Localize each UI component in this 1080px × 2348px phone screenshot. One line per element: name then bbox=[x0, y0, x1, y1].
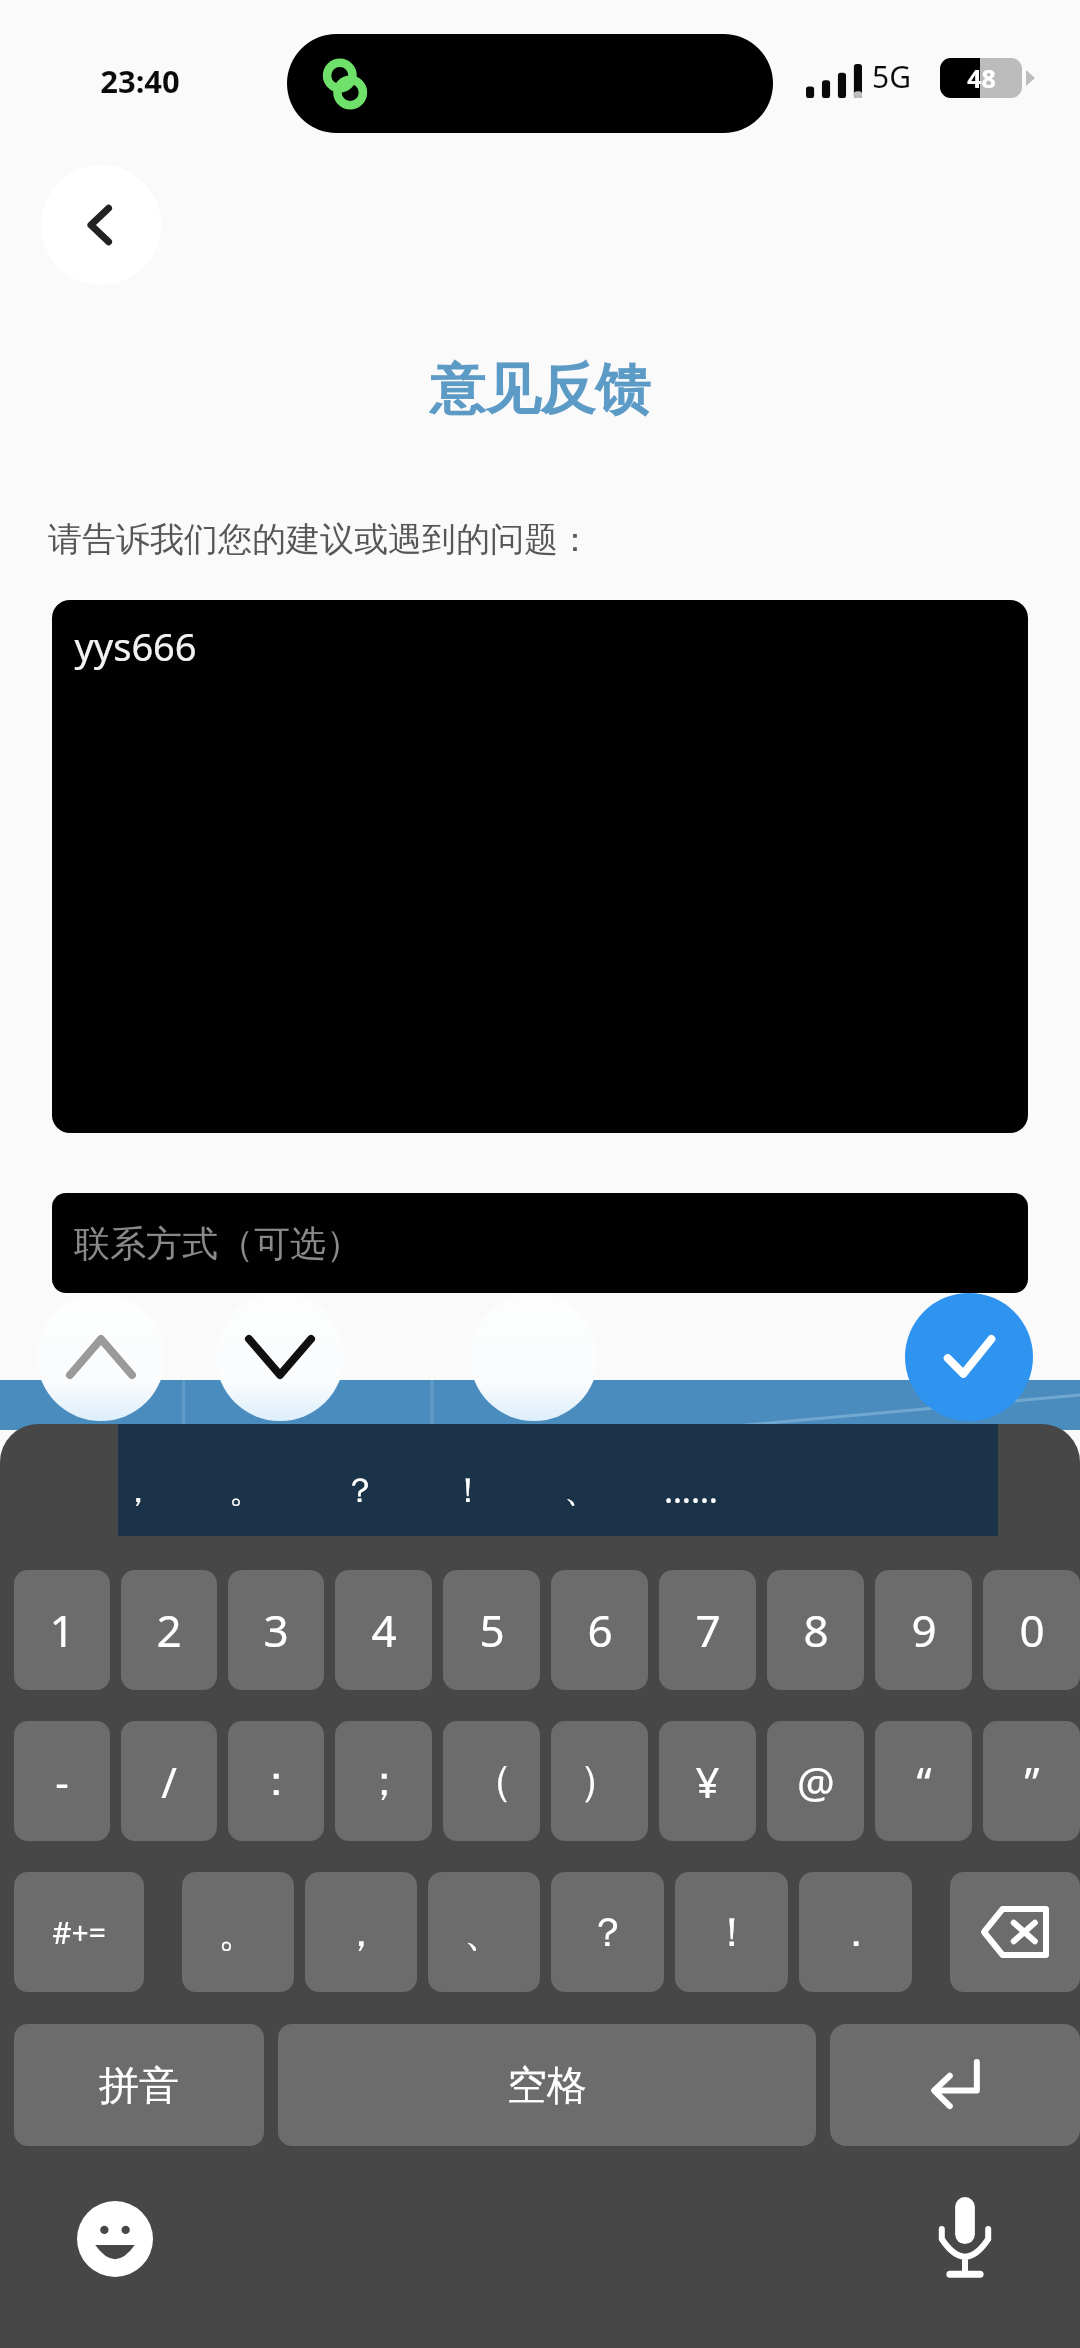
staticText: 拼音 bbox=[99, 2060, 179, 2110]
button[interactable]: 5 bbox=[443, 1570, 540, 1690]
staticText: #+= bbox=[52, 1912, 106, 1953]
button[interactable]: 联系方式（可选） bbox=[52, 1193, 1028, 1293]
button[interactable]: ！ bbox=[422, 1454, 514, 1526]
staticText: 、 bbox=[564, 1469, 598, 1512]
button[interactable]: 空格 bbox=[278, 2024, 816, 2146]
staticText: 联系方式（可选） bbox=[74, 1221, 362, 1266]
button[interactable]: ， bbox=[92, 1454, 184, 1526]
button[interactable]: #+= bbox=[14, 1872, 144, 1992]
button[interactable]: 8 bbox=[767, 1570, 864, 1690]
button[interactable]: More bbox=[470, 1293, 598, 1421]
button[interactable]: ． bbox=[799, 1872, 912, 1992]
button[interactable]: 。 bbox=[182, 1872, 294, 1992]
button[interactable]: Back bbox=[41, 165, 161, 285]
button[interactable]: 1 bbox=[14, 1570, 110, 1690]
button[interactable]: Backspace bbox=[950, 1872, 1080, 1992]
button[interactable]: ； bbox=[335, 1721, 432, 1841]
button[interactable]: 9 bbox=[875, 1570, 972, 1690]
staticText: 23:40 bbox=[100, 60, 180, 102]
staticText: 48 bbox=[967, 61, 996, 95]
button[interactable]: 6 bbox=[551, 1570, 648, 1690]
staticText: 。 bbox=[218, 1907, 258, 1957]
staticText: 5 bbox=[479, 1600, 505, 1660]
staticText: 意见反馈 bbox=[430, 355, 650, 424]
button[interactable]: “ bbox=[875, 1721, 972, 1841]
button[interactable]: 拼音 bbox=[14, 2024, 264, 2146]
staticText: ： bbox=[255, 1755, 297, 1808]
button[interactable]: ： bbox=[228, 1721, 324, 1841]
staticText: ？ bbox=[343, 1469, 377, 1512]
staticText: ” bbox=[1024, 1753, 1040, 1810]
staticText: 6 bbox=[587, 1600, 613, 1660]
staticText: ． bbox=[836, 1907, 876, 1957]
staticText: / bbox=[161, 1753, 177, 1810]
button[interactable]: ） bbox=[551, 1721, 648, 1841]
staticText: …… bbox=[664, 1467, 718, 1513]
button[interactable]: …… bbox=[645, 1454, 737, 1526]
button[interactable]: @ bbox=[767, 1721, 864, 1841]
staticText: 请告诉我们您的建议或遇到的问题： bbox=[48, 518, 592, 561]
staticText: ！ bbox=[712, 1907, 752, 1957]
staticText: 。 bbox=[229, 1469, 263, 1512]
button[interactable]: ？ bbox=[314, 1454, 406, 1526]
button[interactable]: 3 bbox=[228, 1570, 324, 1690]
staticText: ， bbox=[121, 1469, 155, 1512]
staticText: - bbox=[55, 1753, 69, 1810]
button[interactable]: Next field bbox=[216, 1293, 344, 1421]
staticText: 3 bbox=[263, 1600, 289, 1660]
button[interactable]: / bbox=[121, 1721, 217, 1841]
button[interactable]: 、 bbox=[428, 1872, 540, 1992]
staticText: ¥ bbox=[695, 1753, 720, 1810]
staticText: 5G bbox=[872, 56, 911, 97]
button[interactable]: 2 bbox=[121, 1570, 217, 1690]
staticText: 8 bbox=[803, 1600, 829, 1660]
staticText: 4 bbox=[371, 1600, 397, 1660]
staticText: @ bbox=[797, 1753, 835, 1810]
staticText: ） bbox=[579, 1755, 621, 1808]
staticText: 空格 bbox=[507, 2060, 587, 2110]
button[interactable]: Done bbox=[905, 1293, 1033, 1421]
button[interactable]: Voice input bbox=[910, 2184, 1020, 2294]
button[interactable]: ” bbox=[983, 1721, 1080, 1841]
staticText: 7 bbox=[695, 1600, 721, 1660]
staticText: （ bbox=[471, 1755, 513, 1808]
button[interactable]: 4 bbox=[335, 1570, 432, 1690]
button[interactable]: 7 bbox=[659, 1570, 756, 1690]
staticText: ， bbox=[341, 1907, 381, 1957]
staticText: 0 bbox=[1019, 1600, 1045, 1660]
button[interactable]: Previous field bbox=[37, 1293, 165, 1421]
staticText: 9 bbox=[911, 1600, 937, 1660]
button[interactable]: 。 bbox=[200, 1454, 292, 1526]
button[interactable]: ！ bbox=[675, 1872, 788, 1992]
staticText: 2 bbox=[156, 1600, 182, 1660]
button[interactable]: Emoji bbox=[60, 2184, 170, 2294]
button[interactable]: Return bbox=[830, 2024, 1080, 2146]
button[interactable]: ， bbox=[305, 1872, 417, 1992]
staticText: yys666 bbox=[74, 620, 197, 672]
button[interactable]: 、 bbox=[535, 1454, 627, 1526]
button[interactable]: ？ bbox=[551, 1872, 664, 1992]
button[interactable]: - bbox=[14, 1721, 110, 1841]
button[interactable]: 0 bbox=[983, 1570, 1080, 1690]
staticText: ； bbox=[363, 1755, 405, 1808]
staticText: “ bbox=[916, 1753, 932, 1810]
staticText: ！ bbox=[451, 1469, 485, 1512]
button[interactable]: yys666 bbox=[52, 600, 1028, 1133]
staticText: 1 bbox=[49, 1600, 75, 1660]
button[interactable]: ¥ bbox=[659, 1721, 756, 1841]
button[interactable]: （ bbox=[443, 1721, 540, 1841]
staticText: ？ bbox=[588, 1907, 628, 1957]
staticText: 、 bbox=[464, 1907, 504, 1957]
